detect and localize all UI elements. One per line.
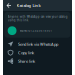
staticText: Send link via WhatsApp xyxy=(18,41,58,47)
staticText: Share link xyxy=(18,58,35,64)
staticText: Anyone with WhatsApp can view your catal… xyxy=(8,15,68,22)
button[interactable]: Copy link xyxy=(3,48,72,57)
staticText: Katalog Link xyxy=(16,3,40,8)
staticText: wa.me/c/12345678901 xyxy=(19,29,52,32)
button[interactable]: Send link via WhatsApp xyxy=(3,40,72,48)
button[interactable]: Share link xyxy=(3,57,72,65)
staticText: Copy link xyxy=(18,50,34,55)
button[interactable]: Back xyxy=(3,0,14,11)
